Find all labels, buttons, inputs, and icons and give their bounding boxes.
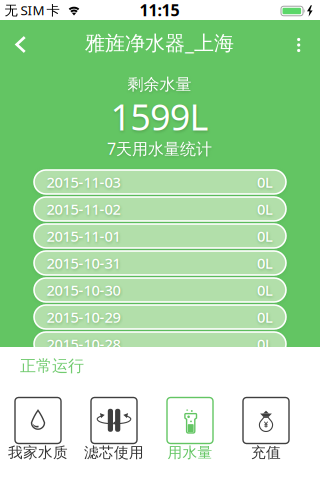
button[interactable]: 用水量 (152, 394, 228, 460)
button[interactable]: 滤芯使用 (76, 394, 152, 460)
staticText: 0L (257, 334, 273, 354)
button[interactable] (14, 35, 27, 53)
staticText: 0L (257, 307, 273, 327)
staticText: 2015-10-31 (46, 253, 120, 273)
staticText: 11:15 (139, 0, 179, 21)
button[interactable]: 我家水质 (0, 394, 76, 460)
staticText: 2015-10-28 (46, 334, 120, 354)
staticText: 2015-10-29 (46, 307, 120, 327)
staticText: 0L (257, 172, 273, 192)
staticText: 充值 (251, 444, 281, 462)
button[interactable] (291, 36, 307, 54)
button[interactable]: 充值 (228, 394, 304, 460)
staticText: 无 SIM 卡 (4, 1, 59, 19)
staticText: 0L (257, 253, 273, 273)
staticText: 0L (257, 280, 273, 300)
staticText: 2015-11-02 (46, 199, 120, 219)
staticText: 0L (257, 226, 273, 246)
staticText: 雅旌净水器_上海 (85, 29, 234, 56)
staticText: 0L (257, 199, 273, 219)
staticText: 滤芯使用 (84, 444, 144, 462)
staticText: 剩余水量 (127, 75, 191, 94)
staticText: 2015-11-03 (46, 172, 120, 192)
staticText: 我家水质 (8, 444, 68, 462)
staticText: 1599L (110, 93, 209, 140)
staticText: 2015-11-01 (46, 226, 120, 246)
staticText: 正常运行 (20, 356, 84, 376)
staticText: 用水量 (167, 444, 212, 462)
staticText: 2015-10-30 (46, 280, 120, 300)
staticText: 7天用水量统计 (107, 138, 212, 159)
